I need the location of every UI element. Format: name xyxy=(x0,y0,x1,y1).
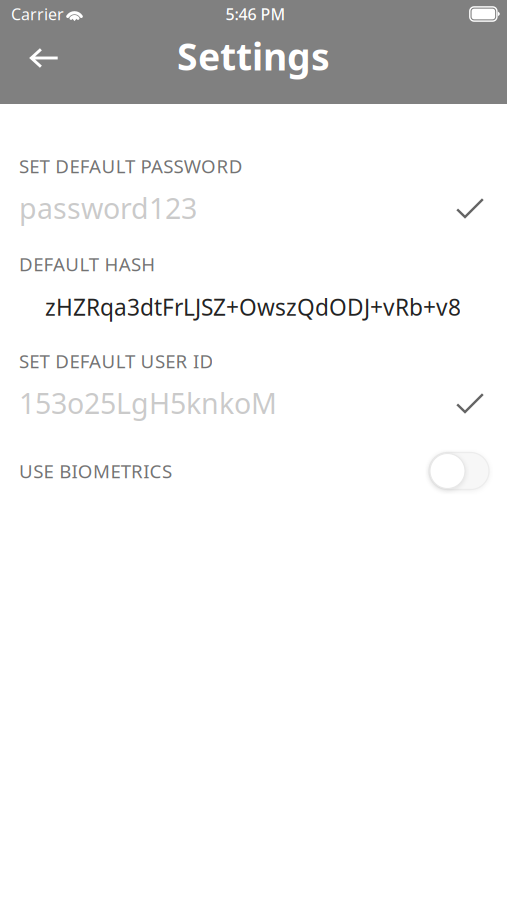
button[interactable]: Set default user ID xyxy=(19,387,489,419)
staticText: 5:46 PM xyxy=(225,3,285,25)
staticText: SET DEFAULT PASSWORD xyxy=(19,153,243,179)
staticText: 153o25LgH5knkoM xyxy=(19,384,277,422)
staticText: DEFAULT HASH xyxy=(19,251,155,277)
staticText: zHZRqa3dtFrLJSZ+OwszQdODJ+vRb+v8 xyxy=(45,292,461,322)
button[interactable]: Use biometrics xyxy=(429,452,489,489)
button[interactable]: Back xyxy=(0,28,81,88)
staticText: SET DEFAULT USER ID xyxy=(19,348,213,374)
staticText: Carrier xyxy=(11,3,64,25)
staticText: password123 xyxy=(19,189,197,227)
staticText: USE BIOMETRICS xyxy=(19,458,172,484)
button[interactable]: Set default password xyxy=(19,192,489,224)
staticText: Settings xyxy=(177,31,330,81)
